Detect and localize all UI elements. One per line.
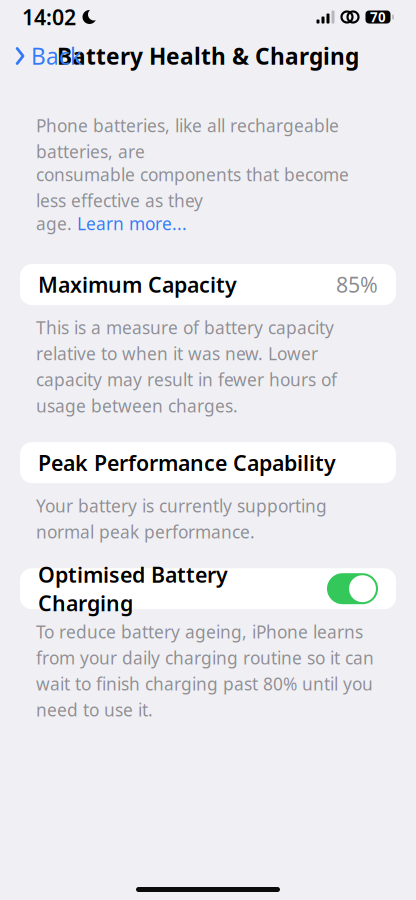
staticText: Maximum Capacity (38, 270, 237, 299)
staticText: Phone batteries, like all rechargeable b… (36, 114, 339, 163)
staticText: age. (36, 212, 77, 235)
staticText: Battery Health & Charging (57, 41, 359, 71)
staticText: Optimised Battery Charging (38, 560, 228, 617)
staticText: 70 (370, 8, 386, 26)
staticText: consumable components that become less e… (36, 163, 349, 212)
staticText: Your battery is currently supporting nor… (36, 494, 327, 543)
button[interactable]: Optimised Battery Charging (20, 568, 396, 609)
staticText: This is a measure of battery capacity re… (36, 316, 337, 417)
button[interactable]: Back (0, 34, 92, 78)
button[interactable]: Peak Performance Capability (20, 442, 396, 483)
staticText: Peak Performance Capability (38, 448, 336, 477)
staticText: To reduce battery ageing, iPhone learns … (36, 620, 374, 721)
staticText: 14:02 (22, 3, 76, 31)
staticText: Learn more... (77, 212, 187, 235)
button[interactable]: Maximum Capacity (20, 264, 396, 305)
button[interactable]: Learn more... (77, 212, 187, 235)
staticText: 85% (336, 270, 378, 299)
staticText: Back (31, 41, 82, 71)
